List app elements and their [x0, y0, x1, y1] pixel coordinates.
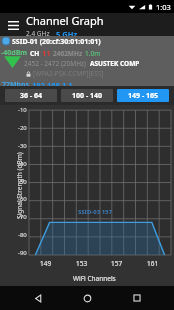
- staticText: -40dBm: [1, 48, 28, 58]
- button[interactable]: 100 - 140: [61, 89, 113, 102]
- staticText: -30: [18, 142, 27, 150]
- staticText: Signal Strength (dBm): [15, 152, 24, 219]
- button[interactable]: Recent apps: [125, 286, 149, 310]
- staticText: ASUSTEK COMP: [90, 59, 140, 68]
- staticText: -80: [18, 231, 27, 239]
- staticText: 153: [76, 259, 88, 268]
- button[interactable]: Home: [75, 286, 99, 310]
- button[interactable]: 149 - 165: [117, 89, 169, 102]
- staticText: -70: [18, 213, 27, 221]
- staticText: SSID-01 (20:cf:30:01:01:01): [12, 37, 101, 47]
- staticText: -10: [18, 106, 27, 114]
- button[interactable]: 5 GHz: [56, 29, 78, 36]
- staticText: 2.4 GHz: [26, 29, 50, 36]
- staticText: 192.168.1.1: [32, 80, 73, 86]
- staticText: 11: [42, 48, 51, 58]
- staticText: 157: [111, 259, 123, 268]
- staticText: 2462MHz: [53, 49, 83, 58]
- staticText: 149 - 165: [128, 91, 158, 101]
- staticText: -90: [18, 249, 27, 257]
- button[interactable]: 2.4 GHz: [26, 29, 50, 36]
- staticText: 1.0m: [85, 49, 101, 58]
- staticText: Channel Graph: [26, 13, 104, 28]
- staticText: -40: [18, 160, 27, 168]
- staticText: 1:03: [156, 2, 171, 12]
- button[interactable]: 36 - 64: [5, 89, 57, 102]
- staticText: 161: [147, 259, 159, 268]
- staticText: -50: [18, 178, 27, 186]
- staticText: WiFi Channels: [73, 274, 116, 283]
- staticText: SSID-03 157: [78, 208, 112, 216]
- staticText: CH: [30, 49, 40, 58]
- staticText: -20: [18, 124, 27, 132]
- staticText: -60: [18, 195, 27, 203]
- staticText: 36 - 64: [20, 91, 42, 101]
- staticText: 149: [40, 259, 52, 268]
- button[interactable]: Open navigation drawer: [4, 16, 22, 34]
- staticText: 72Mbps: [2, 80, 29, 86]
- staticText: 100 - 140: [72, 91, 102, 101]
- button[interactable]: Back: [26, 286, 50, 310]
- staticText: 5 GHz: [56, 29, 78, 36]
- staticText: [WPA2-PSK-CCMP][ESS]: [33, 69, 104, 78]
- staticText: 2452 - 2472 (20MHz): [24, 59, 87, 68]
